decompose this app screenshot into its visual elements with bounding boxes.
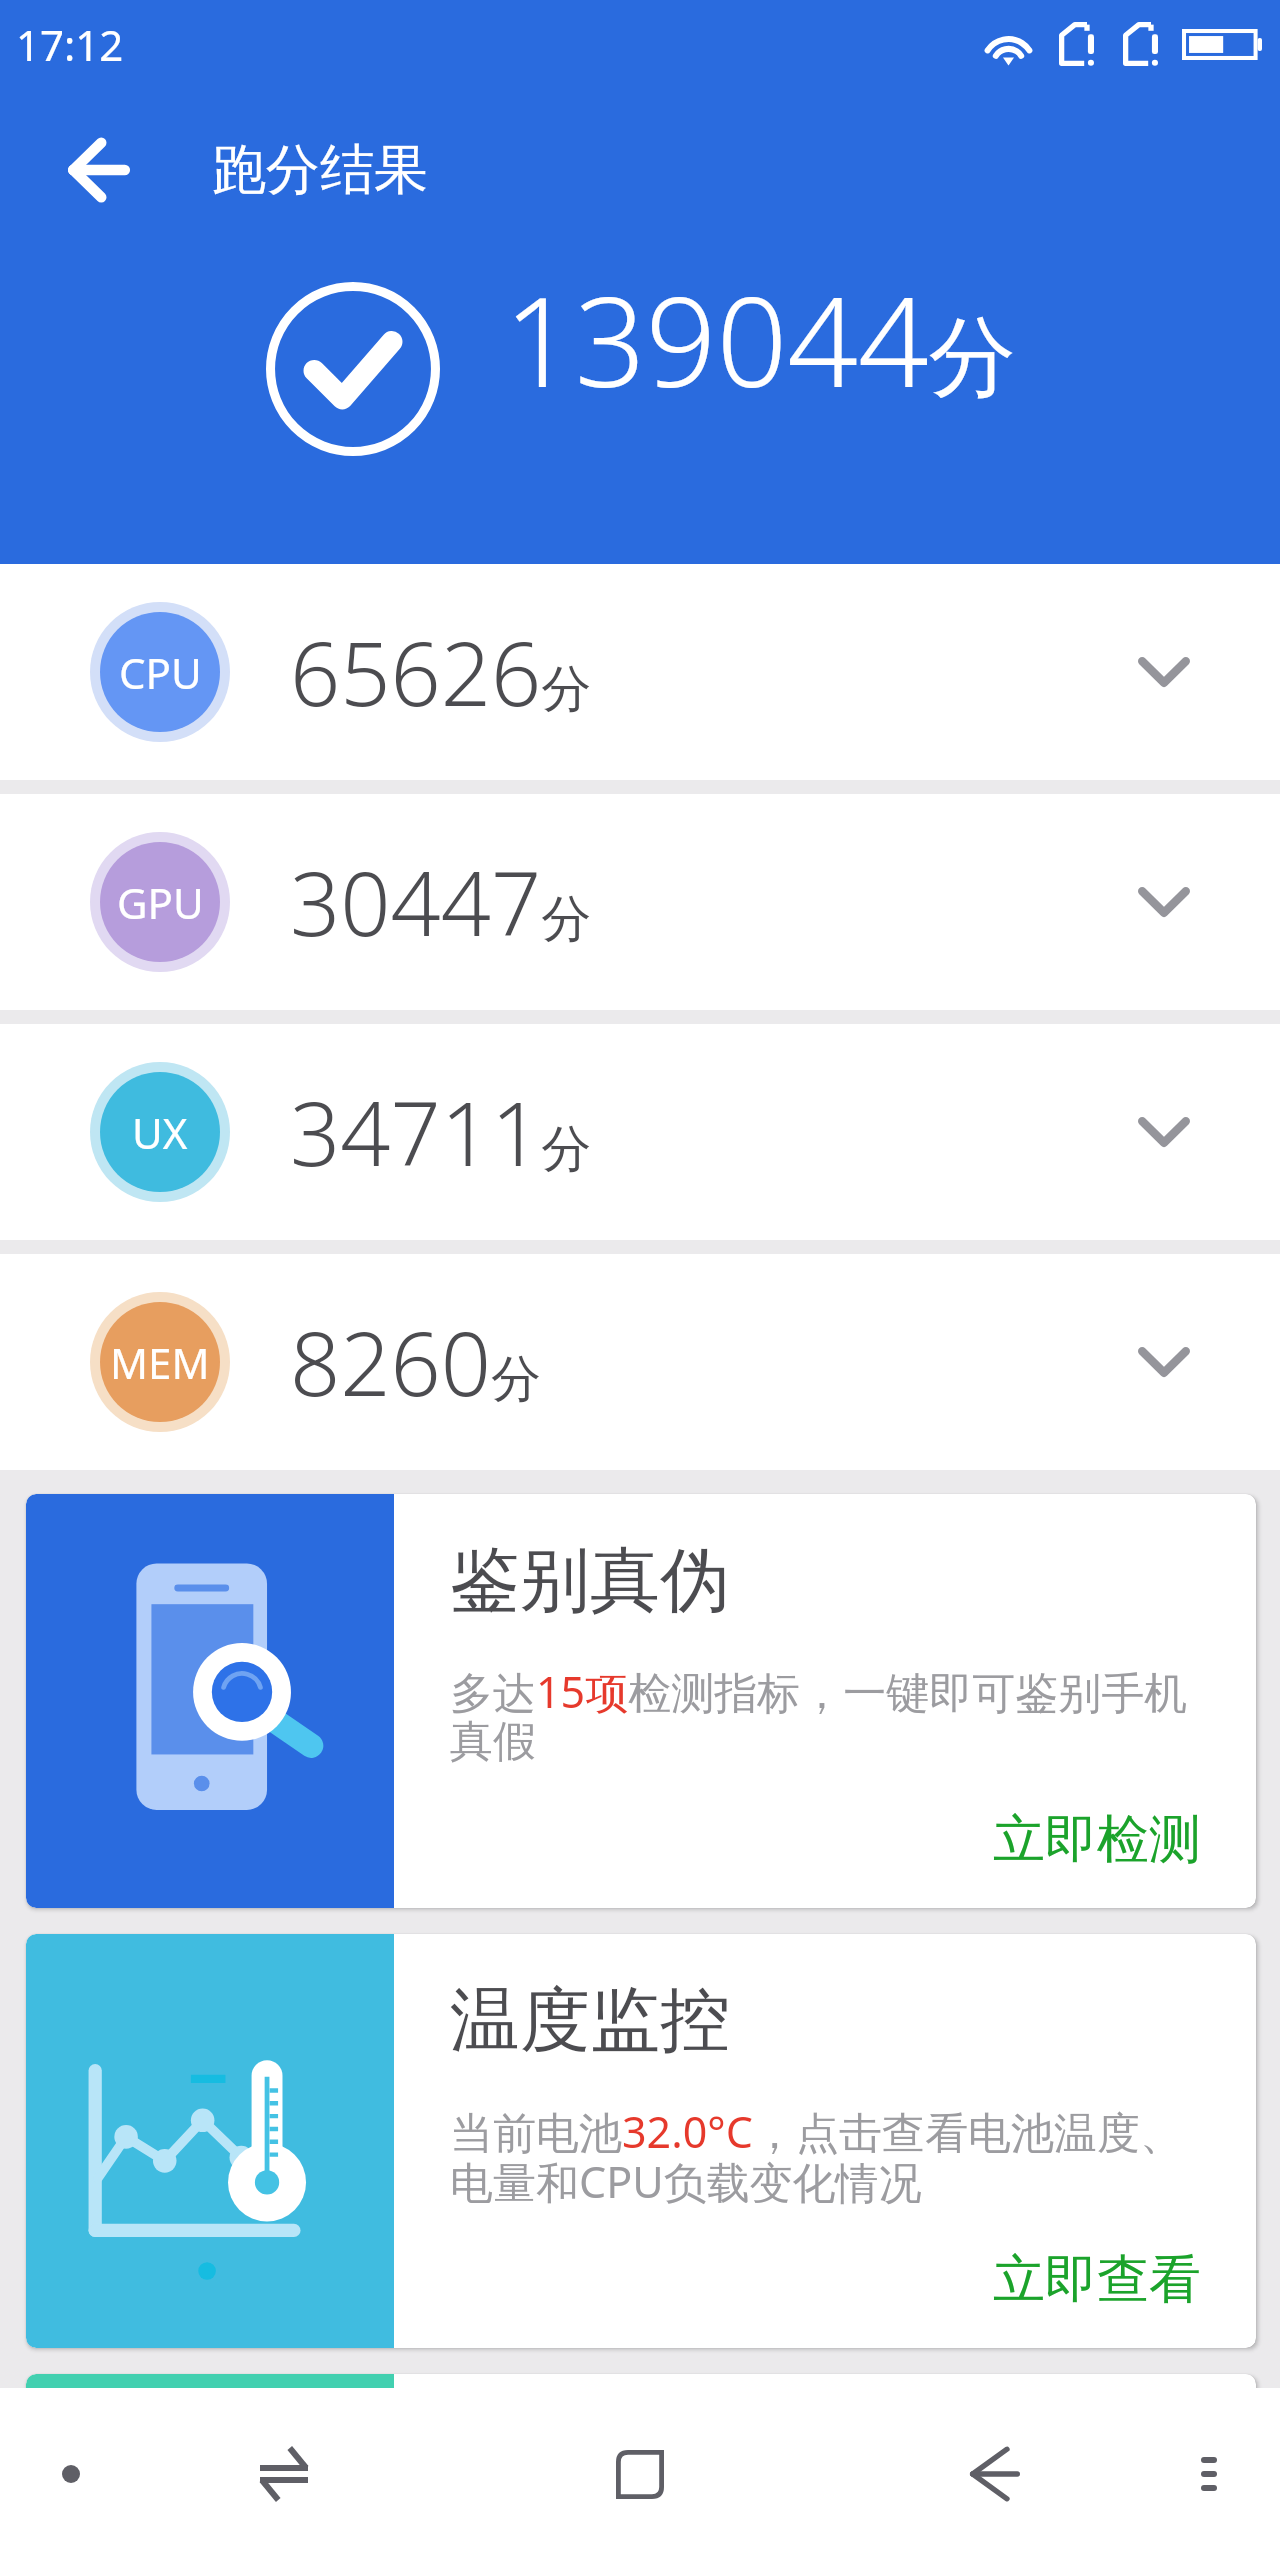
staticText: 立即查看 (993, 2247, 1201, 2313)
staticText: 温度监控 (450, 1977, 730, 2065)
staticText: 8260分 (290, 1302, 541, 1422)
button[interactable] (26, 2374, 1256, 2560)
button[interactable]: Menu (1145, 2388, 1273, 2560)
staticText: 139044分 (504, 254, 1016, 423)
button[interactable]: CPU (0, 564, 1280, 780)
staticText: CPU (119, 644, 202, 701)
staticText: 多达15项检测指标，一键即可鉴别手机真假 (450, 1662, 1204, 1769)
button[interactable]: Recent apps (576, 2388, 704, 2560)
button[interactable]: Back (44, 116, 152, 224)
staticText: 34711分 (290, 1072, 592, 1192)
staticText: GPU (117, 874, 204, 931)
staticText: 跑分结果 (212, 136, 428, 204)
button[interactable]: Back (931, 2388, 1059, 2560)
button[interactable]: MEM (0, 1254, 1280, 1470)
staticText: UX (132, 1104, 188, 1161)
button[interactable]: 鉴别真伪 (26, 1494, 1256, 1908)
button[interactable]: GPU (0, 794, 1280, 1010)
staticText: MEM (110, 1334, 210, 1391)
button[interactable]: UX (0, 1024, 1280, 1240)
button[interactable]: 温度监控 (26, 1934, 1256, 2348)
staticText: 鉴别真伪 (450, 1537, 730, 1625)
staticText: 65626分 (290, 612, 592, 732)
staticText: 当前电池32.0°C，点击查看电池温度、电量和CPU负载变化情况 (450, 2102, 1204, 2210)
button[interactable]: Home (7, 2388, 135, 2560)
staticText: 30447分 (290, 842, 592, 962)
button[interactable]: Switch apps (220, 2388, 348, 2560)
staticText: 17:12 (16, 16, 124, 73)
staticText: 立即检测 (993, 1807, 1201, 1873)
